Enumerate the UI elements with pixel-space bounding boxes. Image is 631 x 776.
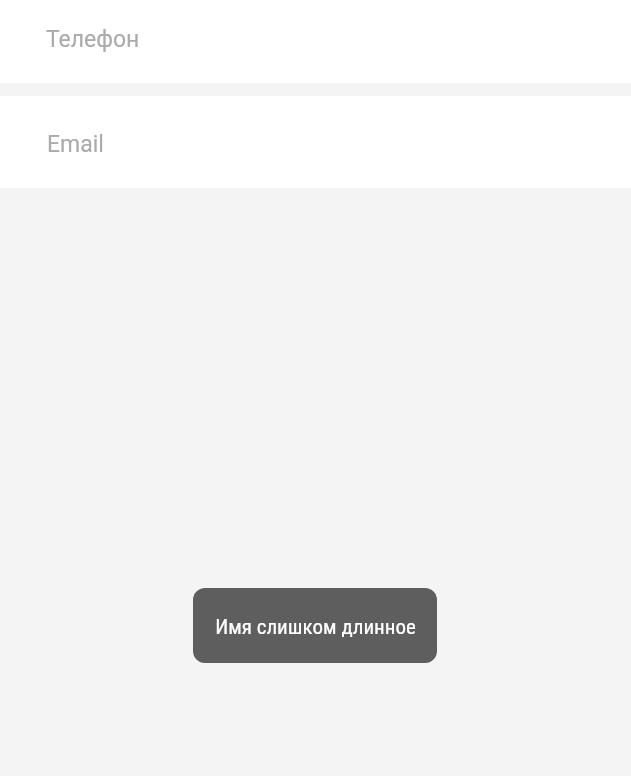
staticText: Телефон (46, 26, 140, 53)
button[interactable]: Телефон (0, 0, 631, 83)
button[interactable]: Email (0, 96, 631, 188)
staticText: Имя слишком длинное (215, 615, 416, 640)
staticText: Email (47, 131, 104, 158)
